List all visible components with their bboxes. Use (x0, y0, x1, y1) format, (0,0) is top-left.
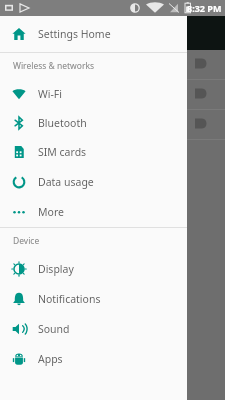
button[interactable]: Sound (0, 314, 187, 344)
staticText: Settings Home (38, 27, 111, 41)
staticText: Wireless & networks (13, 60, 95, 72)
button[interactable]: Notifications (0, 284, 187, 314)
button[interactable]: Bluetooth (0, 108, 187, 137)
staticText: Sound (38, 322, 70, 336)
staticText: More (38, 205, 64, 219)
staticText: Wi-Fi (38, 87, 63, 101)
button[interactable]: Settings Home (0, 16, 187, 52)
staticText: 8:32 PM (187, 2, 222, 14)
button[interactable]: More (0, 197, 187, 227)
staticText: Notifications (38, 292, 101, 306)
button[interactable]: Data usage (0, 167, 187, 197)
staticText: SIM cards (38, 145, 87, 159)
button[interactable]: SIM cards (0, 137, 187, 167)
staticText: Display (38, 262, 74, 276)
staticText: Apps (38, 352, 63, 366)
button[interactable]: Apps (0, 344, 187, 374)
staticText: Data usage (38, 175, 94, 189)
staticText: Bluetooth (38, 116, 87, 130)
button[interactable]: Wi-Fi (0, 79, 187, 108)
staticText: Device (13, 235, 40, 247)
button[interactable]: Display (0, 254, 187, 284)
